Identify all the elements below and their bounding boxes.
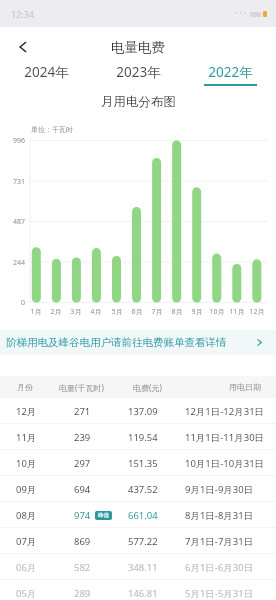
staticText: 07月 (16, 535, 37, 548)
staticText: 1月 (27, 307, 45, 317)
staticText: 11月 (228, 307, 246, 317)
staticText: 12:34 (11, 8, 35, 20)
staticText: 9月1日-9月30日 (185, 483, 254, 496)
staticText: 月份 (17, 382, 33, 392)
staticText: 869 (74, 535, 91, 548)
staticText: 661.04 (128, 509, 158, 522)
staticText: 08月 (16, 509, 37, 522)
staticText: 电费(元) (133, 382, 162, 393)
staticText: 119.54 (128, 431, 158, 444)
staticText: 297 (74, 457, 91, 470)
staticText: 974 (74, 509, 91, 522)
staticText: 348.11 (128, 561, 158, 574)
staticText: 09月 (16, 483, 37, 496)
staticText: 151.35 (128, 457, 158, 470)
staticText: 11月1日-11月30日 (185, 431, 265, 444)
staticText: 271 (74, 405, 91, 418)
staticText: 2月 (47, 307, 65, 317)
staticText: 12月1日-12月31日 (185, 405, 265, 418)
staticText: 月用电分布图 (101, 94, 176, 110)
staticText: 146.81 (128, 587, 158, 600)
staticText: 577.22 (128, 535, 158, 548)
staticText: 289 (74, 587, 91, 600)
staticText: 9月 (188, 307, 206, 317)
staticText: 6月1日-6月30日 (185, 561, 254, 574)
staticText: 487 (4, 217, 25, 227)
staticText: 8月1日-8月31日 (185, 509, 254, 522)
staticText: 0 (4, 298, 25, 308)
staticText: 239 (74, 431, 91, 444)
staticText: 7月 (148, 307, 166, 317)
staticText: 8月 (168, 307, 186, 317)
staticText: 731 (4, 177, 25, 187)
button[interactable]: Back (11, 35, 35, 59)
staticText: 05月 (16, 587, 37, 600)
staticText: 12月 (16, 405, 37, 418)
staticText: 阶梯用电及峰谷电用户请前往电费账单查看详情 (6, 336, 227, 349)
staticText: 996 (4, 136, 25, 146)
staticText: 10月 (208, 307, 226, 317)
button[interactable]: 09月 (0, 476, 276, 502)
button[interactable]: 2024年 (0, 64, 92, 86)
button[interactable]: 11月 (0, 424, 276, 450)
button[interactable]: 08月 (0, 502, 276, 528)
staticText: 437.52 (128, 483, 158, 496)
staticText: 10月 (16, 457, 37, 470)
staticText: 4月 (87, 307, 105, 317)
staticText: 用电日期 (229, 382, 261, 392)
button[interactable]: 12月 (0, 398, 276, 424)
staticText: 电量(千瓦时) (59, 382, 104, 393)
staticText: 12月 (248, 307, 266, 317)
staticText: 6月 (128, 307, 146, 317)
staticText: 7月1日-7月31日 (185, 535, 254, 548)
staticText: 5月1日-5月31日 (185, 587, 254, 600)
staticText: 137.09 (128, 405, 158, 418)
staticText: • • • (235, 9, 247, 19)
staticText: 2022年 (208, 63, 253, 81)
button[interactable]: 2022年 (184, 64, 276, 86)
staticText: 单位：千瓦时 (31, 125, 73, 134)
staticText: 电量电费 (111, 39, 165, 56)
button[interactable]: 05月 (0, 580, 276, 600)
staticText: 2024年 (24, 63, 69, 81)
button[interactable]: 10月 (0, 450, 276, 476)
staticText: 06月 (16, 561, 37, 574)
staticText: 2023年 (116, 63, 161, 81)
staticText: 10月1日-10月31日 (185, 457, 265, 470)
staticText: 5月 (108, 307, 126, 317)
staticText: 11月 (16, 431, 37, 444)
staticText: 582 (74, 561, 91, 574)
button[interactable]: 06月 (0, 554, 276, 580)
button[interactable]: 2023年 (92, 64, 184, 86)
staticText: 244 (4, 258, 25, 268)
button[interactable]: 07月 (0, 528, 276, 554)
staticText: 3月 (67, 307, 85, 317)
staticText: 694 (74, 483, 91, 496)
staticText: 峰值 (98, 512, 109, 519)
button[interactable]: 阶梯用电及峰谷电用户请前往电费账单查看详情 (0, 330, 276, 355)
